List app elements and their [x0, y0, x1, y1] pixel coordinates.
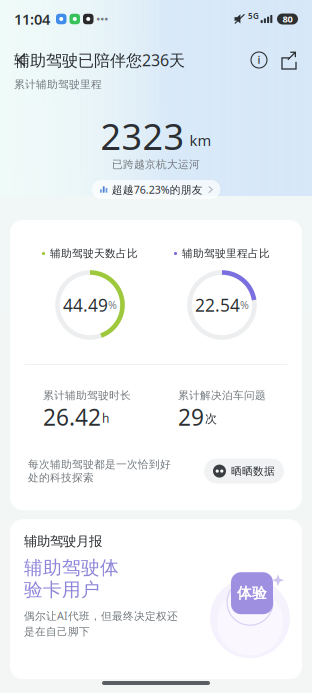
staticText: 80 — [282, 13, 292, 25]
staticText: 晒晒数据 — [231, 465, 275, 478]
staticText: 已跨越京杭大运河 — [112, 158, 200, 171]
staticText: km — [189, 130, 211, 150]
staticText: 次 — [205, 411, 217, 426]
staticText: h — [102, 410, 109, 426]
staticText: i — [257, 52, 260, 67]
staticText: 29 — [178, 402, 204, 432]
staticText: 每次辅助驾驶都是一次恰到好处的科技探索 — [28, 458, 171, 484]
staticText: 累计辅助驾驶时长 — [43, 389, 131, 402]
staticText: 44.49 — [63, 293, 108, 316]
staticText: 5G — [248, 11, 259, 21]
button[interactable]: 分享 — [268, 51, 298, 69]
staticText: 22.54 — [195, 293, 240, 316]
staticText: 辅助驾驶月报 — [24, 533, 102, 549]
staticText: 偶尔让AI代班，但最终决定权还 — [24, 609, 178, 623]
staticText: 辅助驾驶体 — [24, 556, 119, 579]
staticText: 辅助驾驶里程占比 — [182, 247, 270, 260]
button[interactable]: 超越76.23%的朋友 — [92, 180, 220, 199]
button[interactable]: 返回 — [14, 50, 33, 70]
staticText: 11:04 — [14, 9, 50, 29]
staticText: ••• — [96, 13, 108, 25]
staticText: % — [108, 298, 117, 312]
button[interactable]: 信息 — [250, 51, 268, 69]
staticText: 2323 — [100, 112, 184, 160]
staticText: 累计辅助驾驶里程 — [14, 78, 102, 91]
staticText: 体验 — [237, 584, 267, 602]
staticText: 超越76.23%的朋友 — [112, 182, 203, 197]
staticText: 26.42 — [43, 402, 101, 432]
staticText: % — [240, 298, 249, 312]
staticText: 辅助驾驶已陪伴您236天 — [14, 49, 185, 71]
staticText: 辅助驾驶天数占比 — [50, 247, 138, 260]
staticText: 验卡用户 — [24, 578, 100, 601]
staticText: 是在自己脚下 — [24, 625, 90, 638]
button[interactable]: 晒晒数据 — [204, 459, 284, 484]
staticText: 累计解决泊车问题 — [178, 389, 266, 402]
